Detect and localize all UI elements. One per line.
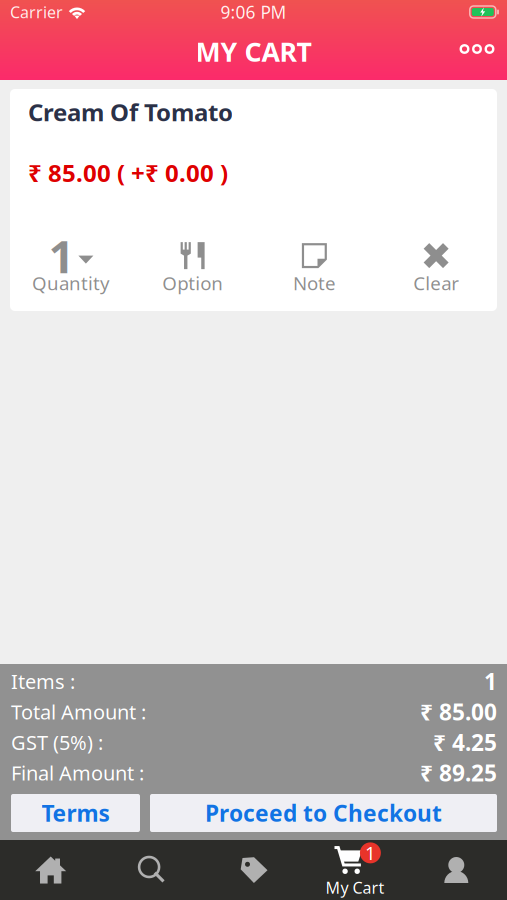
staticText: Final Amount : (11, 759, 144, 786)
button[interactable]: Proceed to Checkout (150, 794, 497, 832)
button[interactable]: Home (0, 840, 101, 900)
staticText: GST (5%) : (11, 729, 103, 756)
staticText: Total Amount : (11, 698, 146, 725)
staticText: ₹ 85.00 ( +₹ 0.00 ) (28, 157, 228, 189)
staticText: Note (293, 271, 336, 295)
staticText: 1 (484, 666, 497, 696)
button[interactable]: Search (101, 840, 203, 900)
button[interactable]: More options (447, 27, 507, 71)
staticText: ₹ 4.25 (433, 727, 497, 757)
staticText: 9:06 PM (220, 0, 286, 23)
button[interactable]: Option (132, 239, 254, 297)
button[interactable]: Note (253, 239, 375, 297)
staticText: Clear (413, 271, 459, 295)
staticText: MY CART (195, 34, 311, 69)
staticText: Carrier (10, 1, 63, 23)
staticText: My Cart (325, 877, 384, 898)
staticText: ₹ 85.00 (420, 697, 497, 727)
staticText: Option (162, 271, 223, 295)
button[interactable]: My Cart (304, 840, 406, 900)
button[interactable]: Clear (375, 239, 497, 297)
staticText: 1 (48, 225, 74, 286)
staticText: Cream Of Tomato (28, 96, 233, 128)
staticText: Proceed to Checkout (205, 798, 442, 828)
staticText: ₹ 89.25 (420, 758, 497, 788)
staticText: 1 (365, 840, 376, 865)
button[interactable]: Terms (11, 794, 140, 832)
button[interactable]: Offers (203, 840, 304, 900)
staticText: Quantity (32, 271, 110, 295)
staticText: Terms (41, 798, 109, 828)
button[interactable]: Profile (406, 840, 507, 900)
button[interactable]: 1 (10, 239, 132, 297)
staticText: Items : (11, 668, 75, 695)
